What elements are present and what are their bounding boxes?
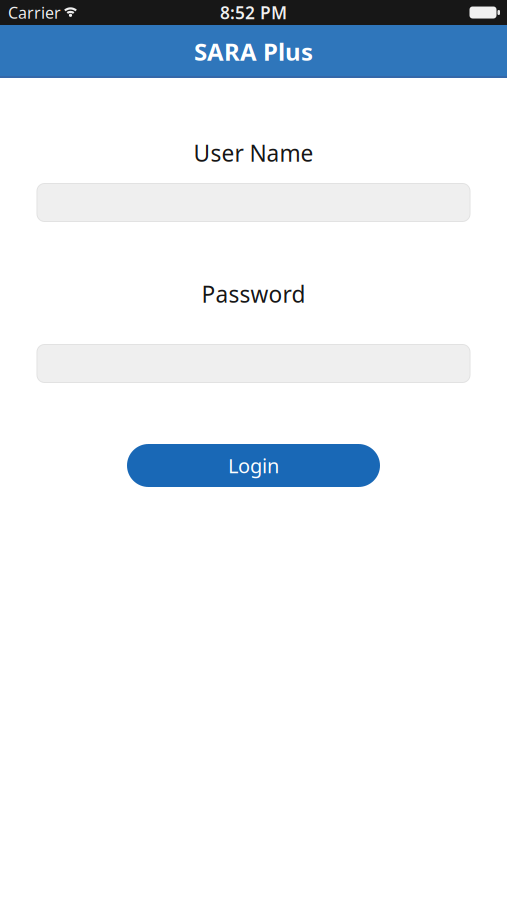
button[interactable]: Login	[127, 444, 380, 487]
staticText: Login	[228, 452, 279, 479]
staticText: Password	[201, 279, 305, 309]
staticText: 8:52 PM	[220, 1, 287, 24]
staticText: User Name	[193, 138, 313, 168]
staticText: SARA Plus	[194, 36, 313, 67]
staticText: Carrier	[8, 2, 61, 23]
